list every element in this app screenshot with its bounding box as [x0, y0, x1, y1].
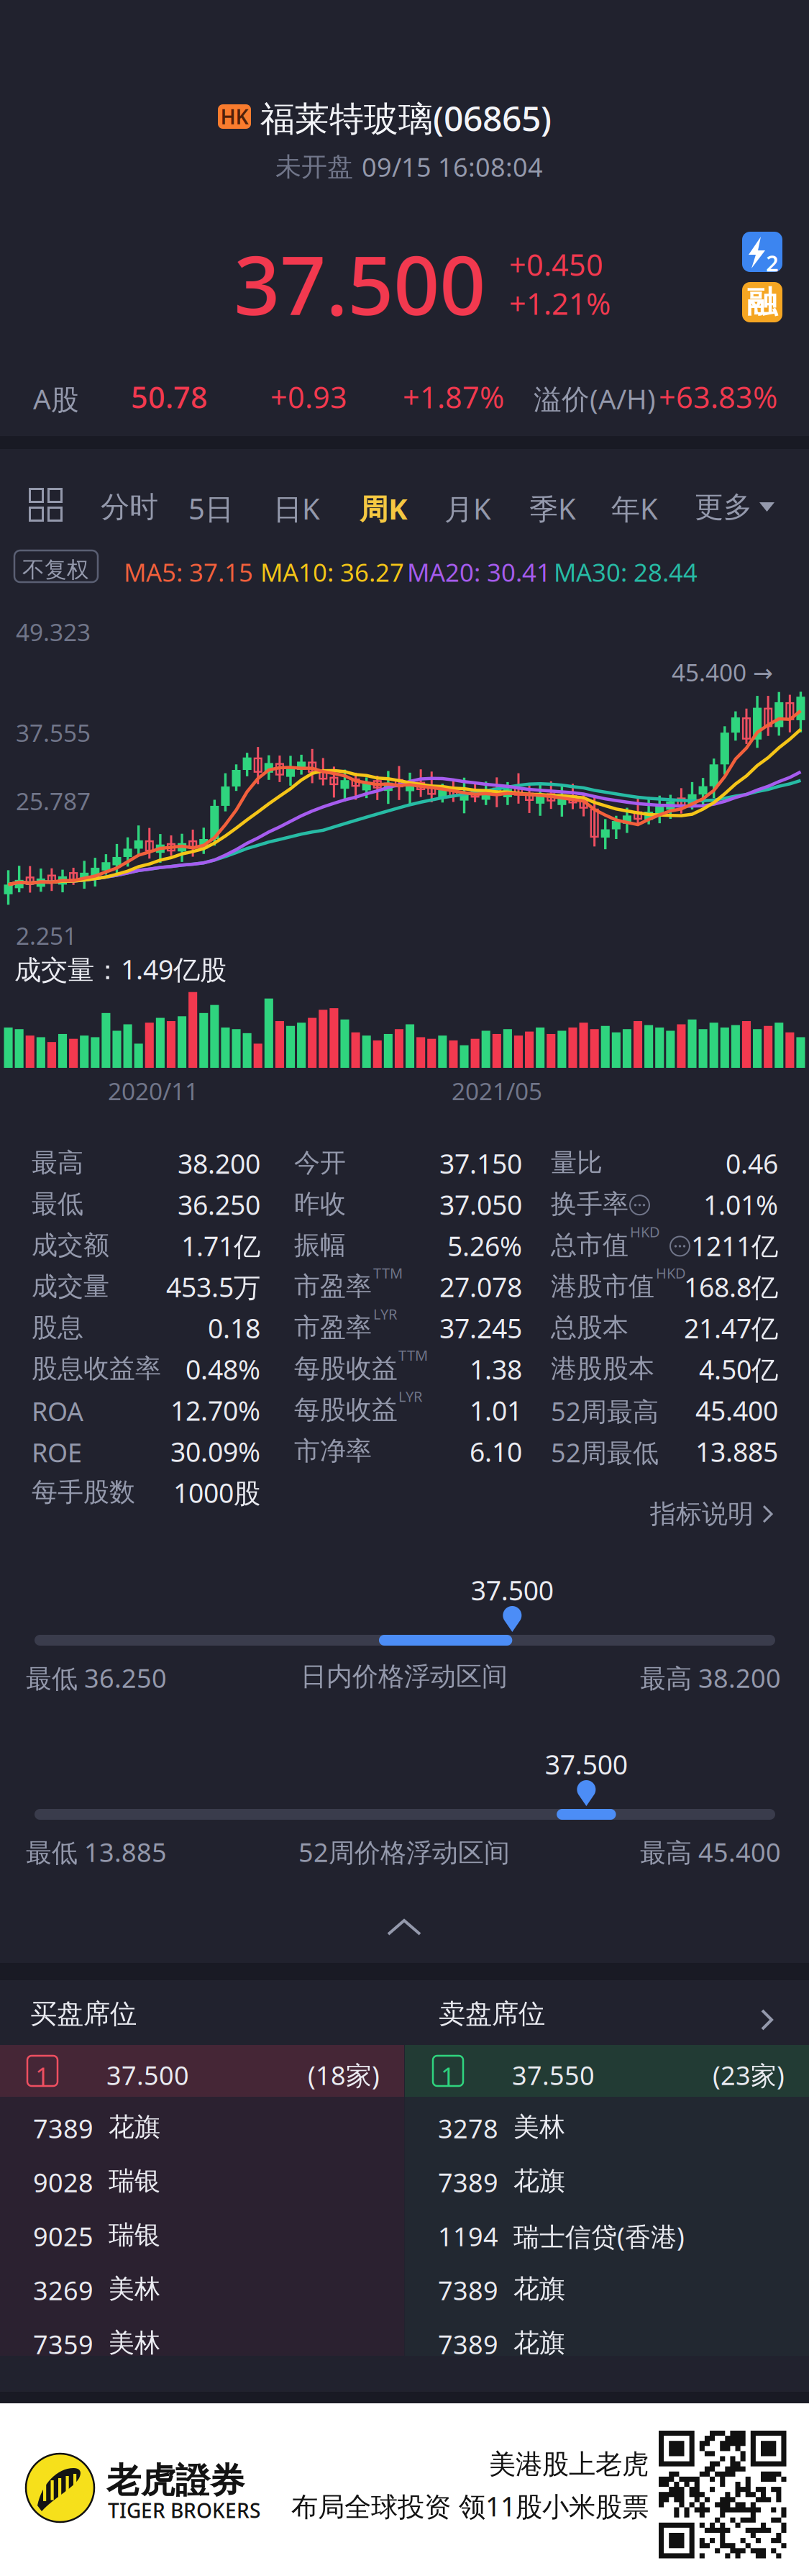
staticText: 1.38	[470, 1351, 522, 1387]
staticText: TTM	[373, 1263, 403, 1282]
staticText: 37.500	[234, 230, 485, 337]
staticText: 股息收益率	[32, 1353, 161, 1385]
staticText: 45.400	[695, 1392, 778, 1428]
staticText: 37.150	[439, 1146, 522, 1181]
staticText: 453.5万	[166, 1269, 260, 1305]
staticText: 瑞银	[109, 2219, 160, 2251]
staticText: 9025	[33, 2219, 93, 2253]
staticText: 指标说明	[650, 1498, 754, 1530]
button[interactable]: 更多	[683, 473, 786, 540]
staticText: 美林	[109, 2327, 160, 2359]
staticText: 49.323	[16, 616, 91, 648]
staticText: 2	[766, 248, 779, 278]
staticText: 0.18	[208, 1310, 260, 1346]
staticText: 36.250	[178, 1187, 260, 1222]
staticText: MA20: 30.41	[407, 555, 551, 589]
staticText: HKD	[656, 1263, 686, 1282]
staticText: A股	[33, 380, 79, 417]
staticText: 溢价(A/H)	[534, 380, 656, 417]
button[interactable]: Level 2 quotes	[742, 232, 782, 272]
button[interactable]: 5日	[174, 473, 248, 543]
staticText: (18家)	[308, 2058, 380, 2092]
staticText: 52周价格浮动区间	[298, 1835, 510, 1869]
staticText: 季K	[529, 489, 576, 528]
staticText: 总市值	[551, 1229, 629, 1261]
staticText: 168.8亿	[684, 1269, 778, 1305]
staticText: 周K	[360, 489, 408, 528]
staticText: 1194	[438, 2219, 498, 2253]
staticText: MA30: 28.44	[554, 555, 698, 589]
staticText: 日K	[273, 489, 320, 528]
staticText: 卖盘席位	[439, 1997, 545, 2031]
staticText: 今开	[294, 1147, 346, 1179]
button[interactable]: 季K	[515, 473, 590, 543]
staticText: 27.078	[439, 1269, 522, 1305]
staticText: 1211亿	[691, 1228, 778, 1264]
staticText: 市盈率	[294, 1312, 372, 1343]
button[interactable]: 分时	[86, 473, 173, 540]
staticText: 37.550	[512, 2058, 595, 2092]
staticText: 市盈率	[294, 1270, 372, 1302]
staticText: 每股收益	[294, 1394, 398, 1426]
staticText: 7389	[438, 2273, 498, 2307]
button[interactable]: All seats	[742, 1990, 792, 2049]
staticText: 4.50亿	[699, 1351, 778, 1387]
staticText: 1.71亿	[181, 1228, 260, 1264]
staticText: +63.83%	[659, 377, 777, 417]
staticText: +1.87%	[403, 377, 504, 417]
staticText: 2021/05	[452, 1075, 542, 1107]
staticText: HK	[220, 103, 248, 130]
staticText: 最高 38.200	[640, 1661, 781, 1695]
staticText: 振幅	[294, 1229, 346, 1261]
staticText: 市净率	[294, 1435, 372, 1467]
staticText: 美港股上老虎	[489, 2448, 649, 2481]
button[interactable]: Collapse details	[362, 1894, 446, 1961]
staticText: LYR	[373, 1304, 397, 1324]
staticText: ROA	[32, 1394, 83, 1428]
staticText: 6.10	[470, 1434, 522, 1469]
button[interactable]: 日K	[259, 473, 334, 543]
staticText: 日内价格浮动区间	[301, 1661, 508, 1693]
staticText: 不复权	[22, 556, 89, 583]
staticText: 37.500	[545, 1746, 628, 1782]
staticText: 股息	[32, 1312, 83, 1343]
staticText: 花旗	[513, 2273, 565, 2305]
staticText: 月K	[444, 489, 491, 528]
button[interactable]: 指标说明	[637, 1485, 786, 1543]
staticText: ROE	[32, 1435, 82, 1469]
staticText: 37.555	[16, 717, 91, 749]
staticText: 最高 45.400	[640, 1835, 781, 1869]
staticText: 老虎證券	[106, 2459, 244, 2502]
staticText: 买盘席位	[30, 1997, 137, 2031]
staticText: 量比	[551, 1147, 603, 1179]
staticText: 瑞银	[109, 2165, 160, 2197]
button[interactable]: 年K	[597, 473, 672, 543]
staticText: MA5: 37.15	[124, 555, 253, 589]
staticText: 年K	[611, 489, 658, 528]
staticText: 成交额	[32, 1229, 109, 1261]
staticText: 1	[35, 2059, 50, 2092]
staticText: 更多	[695, 489, 752, 525]
staticText: 37.500	[106, 2058, 189, 2092]
staticText: 30.09%	[170, 1434, 260, 1469]
staticText: 21.47亿	[684, 1310, 778, 1346]
button[interactable]: Margin trading	[742, 282, 782, 322]
staticText: 37.245	[439, 1310, 522, 1346]
staticText: 成交量：1.49亿股	[14, 951, 227, 987]
staticText: 38.200	[178, 1146, 260, 1181]
staticText: 5日	[188, 489, 234, 528]
button[interactable]: Chart layout options	[14, 473, 77, 536]
staticText: 分时	[101, 489, 158, 525]
button[interactable]: 月K	[430, 473, 506, 543]
staticText: 0.46	[726, 1146, 778, 1181]
staticText: 花旗	[513, 2327, 565, 2359]
staticText: 2.251	[16, 920, 77, 951]
staticText: 最低	[32, 1188, 83, 1220]
button[interactable]: 周K	[345, 473, 422, 543]
staticText: 52周最低	[551, 1435, 659, 1469]
staticText: 港股股本	[551, 1353, 654, 1385]
staticText: 1000股	[173, 1475, 260, 1510]
staticText: 12.70%	[170, 1392, 260, 1428]
staticText: 3269	[33, 2273, 93, 2307]
staticText: 未开盘	[275, 151, 353, 183]
